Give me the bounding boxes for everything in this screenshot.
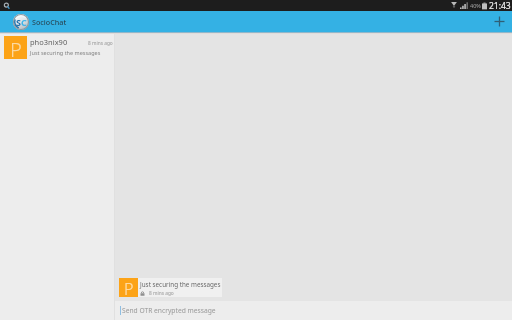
- staticText: SocioChat: [32, 17, 67, 27]
- button[interactable]: New chat: [489, 11, 510, 32]
- staticText: Just securing the messages: [30, 49, 101, 56]
- button[interactable]: Send OTR encrypted message: [115, 301, 512, 320]
- staticText: 8 mins ago: [149, 290, 174, 297]
- staticText: S: [16, 16, 21, 28]
- staticText: Just securing the messages: [140, 280, 221, 289]
- staticText: C: [21, 16, 27, 28]
- staticText: pho3nix90: [30, 37, 68, 47]
- button[interactable]: P: [119, 278, 222, 297]
- button[interactable]: P: [0, 32, 114, 59]
- staticText: 40%: [470, 2, 481, 9]
- staticText: Send OTR encrypted message: [122, 306, 216, 315]
- staticText: 21:43: [489, 0, 511, 11]
- staticText: 8 mins ago: [88, 40, 113, 47]
- staticText: P: [10, 36, 22, 59]
- staticText: P: [124, 278, 134, 297]
